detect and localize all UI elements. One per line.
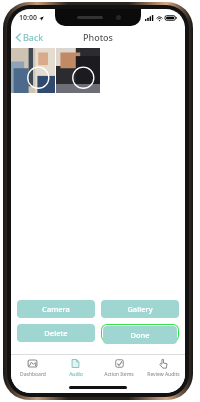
button[interactable]: Delete <box>17 324 95 342</box>
staticText: Camera <box>42 304 70 314</box>
button[interactable]: Photo <box>11 48 55 93</box>
button[interactable]: Camera <box>17 300 95 318</box>
button[interactable]: Done <box>103 326 177 344</box>
staticText: Review Audits <box>147 371 180 378</box>
staticText: Gallery <box>127 304 153 314</box>
button[interactable]: Audio <box>54 355 97 381</box>
staticText: Photos <box>83 31 113 43</box>
staticText: Audio <box>69 371 83 378</box>
button[interactable]: Action Items <box>97 355 141 381</box>
button[interactable]: Review Audits <box>141 355 185 381</box>
staticText: Back <box>23 31 44 43</box>
staticText: Action Items <box>104 371 134 378</box>
button[interactable]: Photo <box>56 48 100 93</box>
button[interactable]: Gallery <box>101 300 179 318</box>
button[interactable]: Dashboard <box>11 355 54 381</box>
button[interactable]: Back <box>11 26 50 48</box>
staticText: Dashboard <box>20 371 46 378</box>
staticText: Delete <box>44 328 68 338</box>
staticText: Done <box>130 330 150 340</box>
staticText: 10:00 <box>19 13 37 23</box>
